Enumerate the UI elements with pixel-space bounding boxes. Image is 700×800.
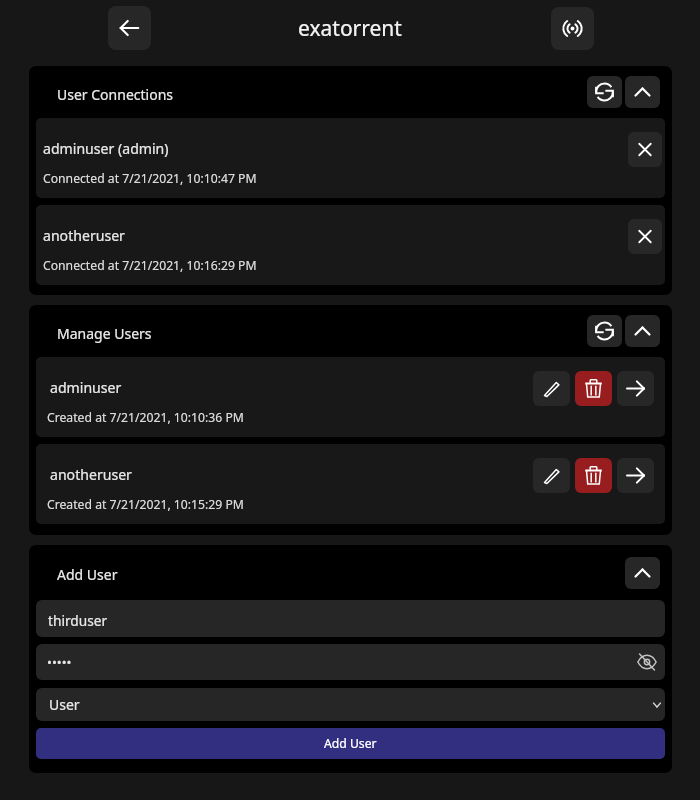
button[interactable]: thirduser — [36, 600, 665, 637]
staticText: Connected at 7/21/2021, 10:16:29 PM — [43, 257, 257, 274]
staticText: Created at 7/21/2021, 10:15:29 PM — [47, 496, 244, 513]
staticText: Connected at 7/21/2021, 10:10:47 PM — [43, 170, 257, 187]
button[interactable]: ••••• — [36, 644, 665, 680]
button[interactable]: Collapse section — [625, 557, 660, 589]
staticText: ••••• — [47, 653, 72, 671]
button[interactable]: Show password — [637, 652, 657, 672]
button[interactable]: Open user — [617, 371, 654, 406]
button[interactable]: anotheruser — [36, 205, 665, 285]
button[interactable]: Collapse section — [625, 76, 660, 108]
button[interactable]: User — [36, 688, 665, 721]
button[interactable]: Disconnect user — [628, 132, 662, 167]
button[interactable]: Edit user — [533, 371, 570, 406]
button[interactable]: Edit user — [533, 458, 570, 493]
staticText: Add User — [324, 735, 377, 752]
button[interactable]: Add User — [36, 728, 665, 759]
button[interactable]: Live status — [551, 7, 594, 50]
staticText: User Connections — [57, 85, 173, 104]
button[interactable]: adminuser — [36, 357, 665, 437]
button[interactable]: Refresh — [587, 315, 622, 347]
button[interactable]: Disconnect user — [628, 219, 662, 254]
staticText: anotheruser — [50, 465, 132, 484]
button[interactable]: adminuser (admin) — [36, 118, 665, 198]
staticText: Manage Users — [57, 324, 152, 343]
button[interactable]: Open user — [617, 458, 654, 493]
staticText: anotheruser — [43, 226, 125, 245]
staticText: Add User — [57, 565, 118, 584]
button[interactable]: anotheruser — [36, 444, 665, 524]
staticText: exatorrent — [298, 14, 402, 43]
button[interactable]: Refresh — [587, 76, 622, 108]
button[interactable]: Collapse section — [625, 315, 660, 347]
staticText: Created at 7/21/2021, 10:10:36 PM — [47, 409, 244, 426]
button[interactable]: Back — [108, 6, 151, 50]
staticText: adminuser (admin) — [43, 139, 169, 158]
staticText: User — [49, 695, 80, 714]
button[interactable]: Delete user — [575, 371, 612, 406]
staticText: thirduser — [48, 611, 108, 630]
staticText: adminuser — [50, 378, 122, 397]
button[interactable]: Delete user — [575, 458, 612, 493]
